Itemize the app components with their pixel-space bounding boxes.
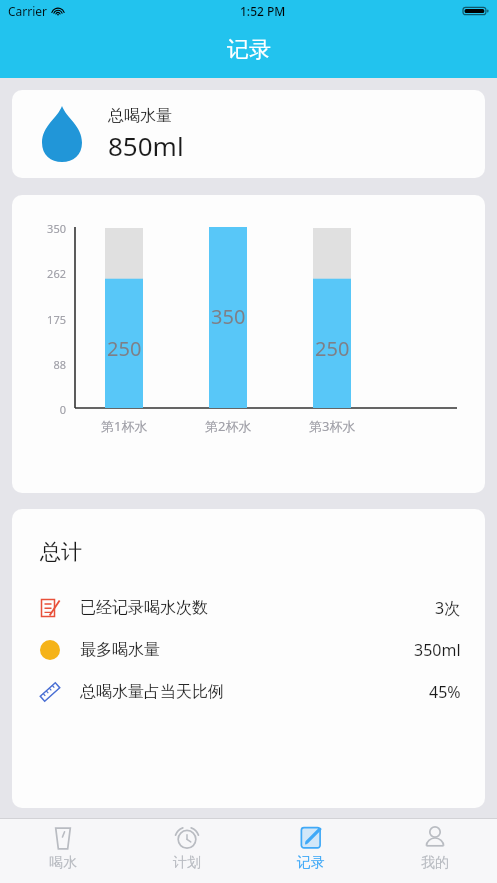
staticText: 第2杯水	[205, 417, 252, 435]
staticText: 第1杯水	[101, 417, 148, 435]
staticText: 计划	[173, 854, 201, 872]
button[interactable]: 已经记录喝水次数	[12, 587, 485, 629]
button[interactable]: 总喝水量	[12, 90, 485, 178]
staticText: 175	[47, 312, 66, 327]
staticText: 0	[59, 402, 66, 417]
staticText: 我的	[421, 854, 449, 872]
staticText: 250	[107, 335, 142, 362]
button[interactable]: 计划	[125, 819, 249, 883]
staticText: 总计	[40, 539, 82, 565]
staticText: 250	[315, 335, 350, 362]
button[interactable]: 记录	[249, 819, 373, 883]
staticText: 第3杯水	[309, 417, 356, 435]
staticText: 88	[53, 357, 66, 372]
staticText: 45%	[429, 681, 461, 703]
staticText: 3次	[435, 597, 461, 619]
button[interactable]: 我的	[373, 819, 497, 883]
staticText: 350	[47, 221, 66, 236]
staticText: 总喝水量占当天比例	[80, 682, 224, 702]
staticText: 最多喝水量	[80, 640, 160, 660]
staticText: 记录	[227, 36, 271, 64]
staticText: 850ml	[108, 128, 184, 163]
button[interactable]: 总喝水量占当天比例	[12, 671, 485, 713]
staticText: 总喝水量	[108, 106, 172, 126]
button[interactable]: 喝水	[0, 819, 125, 883]
staticText: 350ml	[414, 639, 461, 661]
button[interactable]: 最多喝水量	[12, 629, 485, 671]
staticText: 已经记录喝水次数	[80, 598, 208, 618]
staticText: Carrier	[8, 3, 48, 19]
staticText: 1:52 PM	[240, 3, 286, 19]
staticText: 262	[47, 266, 66, 281]
staticText: 喝水	[49, 854, 77, 872]
staticText: 记录	[297, 854, 325, 872]
staticText: 350	[211, 303, 246, 330]
